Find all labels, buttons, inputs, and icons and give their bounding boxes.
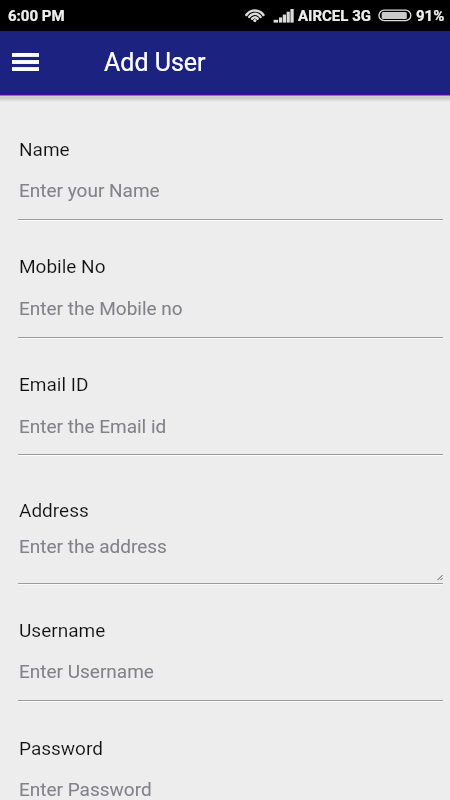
staticText: Enter your Name xyxy=(19,179,160,201)
staticText: Enter Username xyxy=(19,660,154,682)
staticText: Enter the Email id xyxy=(19,415,167,437)
button[interactable]: Enter the Mobile no xyxy=(18,291,443,339)
button[interactable]: Enter the address xyxy=(18,529,443,585)
button[interactable]: Enter the Email id xyxy=(18,409,443,457)
staticText: Email ID xyxy=(19,373,89,395)
staticText: 6:00 PM xyxy=(8,7,65,25)
staticText: Enter Password xyxy=(19,778,152,800)
staticText: Username xyxy=(19,619,106,641)
staticText: Name xyxy=(19,138,70,160)
staticText: AIRCEL 3G xyxy=(298,7,371,25)
staticText: Enter the address xyxy=(19,535,167,557)
staticText: Enter the Mobile no xyxy=(19,297,183,319)
button[interactable]: Open navigation menu xyxy=(3,41,47,85)
staticText: Password xyxy=(19,737,103,759)
staticText: Add User xyxy=(104,48,206,77)
staticText: 91% xyxy=(416,7,445,25)
staticText: Address xyxy=(19,499,89,521)
button[interactable]: Enter Password xyxy=(18,772,443,800)
button[interactable]: Enter Username xyxy=(18,654,443,703)
staticText: Mobile No xyxy=(19,255,106,277)
button[interactable]: Enter your Name xyxy=(18,173,443,221)
